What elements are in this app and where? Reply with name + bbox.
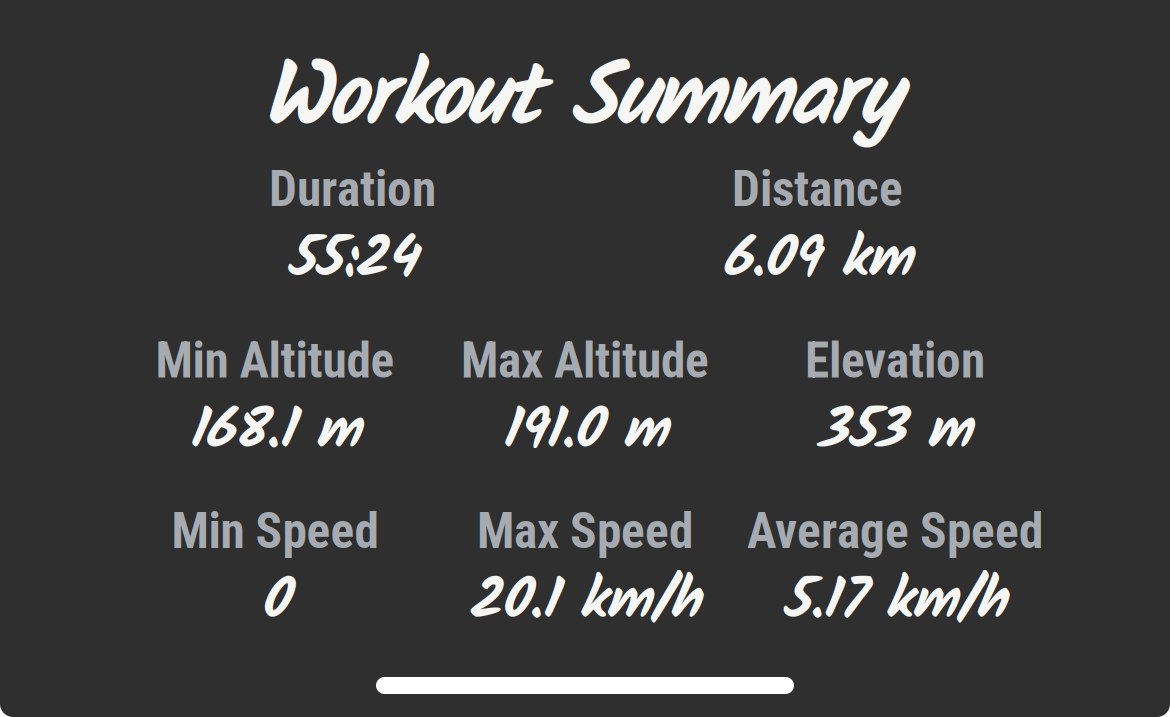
staticText: Workout Summary: [263, 31, 903, 171]
button[interactable]: Elevation: [740, 332, 1050, 479]
staticText: 20.1 km/ h: [469, 558, 701, 648]
staticText: 191.0 m: [501, 388, 669, 477]
staticText: 5.17 km/ h: [783, 558, 1007, 648]
staticText: Max Speed: [477, 502, 693, 560]
button[interactable]: Min Altitude: [120, 332, 430, 479]
staticText: 353 m: [818, 388, 972, 477]
staticText: Max Altitude: [461, 332, 709, 390]
staticText: 6.09 km: [722, 216, 913, 306]
staticText: 55:24: [287, 216, 418, 306]
button[interactable]: Duration: [120, 160, 585, 307]
button[interactable]: Average Speed: [740, 502, 1050, 649]
staticText: Duration: [269, 160, 436, 218]
staticText: Min Speed: [171, 502, 378, 560]
staticText: Elevation: [805, 332, 985, 390]
staticText: 0: [260, 558, 289, 648]
staticText: Distance: [732, 160, 903, 218]
staticText: Average Speed: [747, 502, 1043, 560]
button[interactable]: Max Speed: [430, 502, 740, 649]
button[interactable]: Min Speed: [120, 502, 430, 649]
button[interactable]: Max Altitude: [430, 332, 740, 479]
button[interactable]: Distance: [585, 160, 1050, 307]
staticText: 168.1 m: [188, 388, 362, 477]
staticText: Min Altitude: [155, 332, 394, 390]
